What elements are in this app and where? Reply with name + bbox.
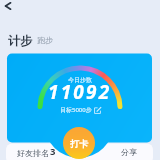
staticText: 计步	[8, 33, 32, 48]
button[interactable]: 目标5000步	[60, 106, 101, 114]
button[interactable]: 计步	[8, 33, 32, 48]
button[interactable]: Back	[0, 0, 16, 14]
staticText: 分享	[121, 147, 137, 157]
button[interactable]: 跑步	[37, 35, 53, 45]
button[interactable]: 好友排名	[17, 145, 56, 158]
staticText: 今日步数	[68, 76, 92, 84]
staticText: 跑步	[37, 35, 53, 45]
staticText: 好友排名	[17, 148, 49, 158]
staticText: 3	[50, 145, 56, 158]
staticText: 目标5000步	[60, 106, 92, 114]
button[interactable]: 分享	[121, 147, 137, 157]
button[interactable]: 打卡	[63, 127, 95, 159]
staticText: 打卡	[70, 138, 88, 149]
staticText: 11092	[48, 79, 112, 105]
